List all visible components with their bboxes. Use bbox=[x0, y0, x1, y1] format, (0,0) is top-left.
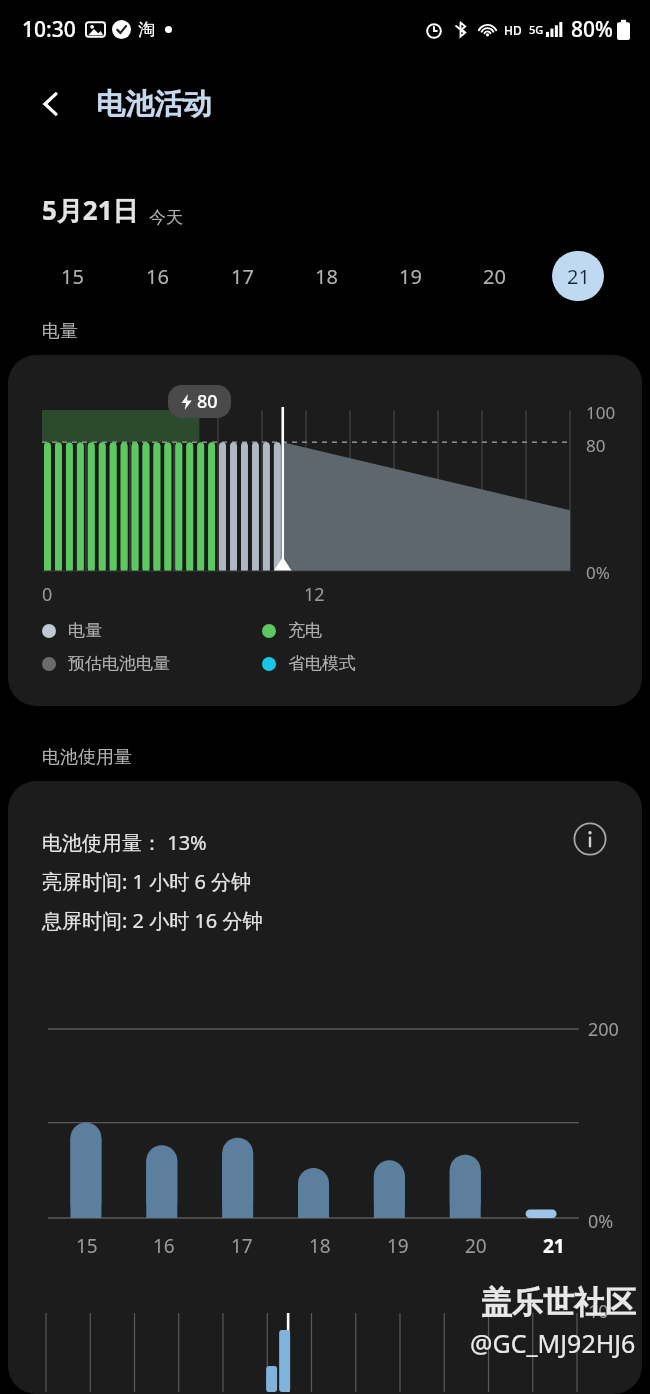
staticText: 省电模式 bbox=[288, 653, 356, 674]
staticText: 16 bbox=[146, 263, 169, 290]
staticText: 0% bbox=[588, 1209, 614, 1234]
staticText: 0 bbox=[42, 582, 53, 607]
button[interactable]: 17 bbox=[200, 250, 284, 302]
staticText: 10 bbox=[588, 1299, 609, 1324]
staticText: 淘 bbox=[138, 19, 155, 40]
staticText: 电池活动 bbox=[96, 86, 212, 123]
staticText: 18 bbox=[309, 1233, 331, 1259]
staticText: 200 bbox=[588, 1017, 619, 1042]
button[interactable]: 21 bbox=[536, 250, 620, 302]
staticText: 19 bbox=[399, 263, 422, 290]
staticText: 15 bbox=[76, 1233, 98, 1259]
staticText: 预估电池电量 bbox=[68, 653, 170, 674]
staticText: 5月21日 bbox=[42, 192, 139, 228]
staticText: 80 bbox=[197, 389, 218, 414]
staticText: 17 bbox=[231, 263, 254, 290]
staticText: 80 bbox=[586, 434, 606, 457]
button[interactable]: 16 bbox=[115, 250, 200, 302]
staticText: @GC_MJ92HJ6 bbox=[470, 1326, 636, 1360]
staticText: 今天 bbox=[149, 207, 183, 228]
staticText: 亮屏时间: 1 小时 6 分钟 bbox=[42, 868, 252, 895]
staticText: 18 bbox=[315, 263, 338, 290]
staticText: 电池使用量： 13% bbox=[42, 829, 207, 856]
button[interactable]: Info bbox=[568, 817, 612, 861]
staticText: 10:30 bbox=[22, 15, 76, 44]
staticText: 16 bbox=[153, 1233, 175, 1259]
staticText: 电量 bbox=[42, 320, 78, 343]
staticText: 15 bbox=[61, 263, 84, 290]
staticText: 0% bbox=[586, 561, 610, 584]
staticText: 电池使用量 bbox=[42, 746, 132, 769]
button[interactable]: 100 bbox=[8, 355, 642, 706]
staticText: 21 bbox=[543, 1233, 565, 1259]
staticText: HD bbox=[504, 22, 522, 38]
staticText: 80% bbox=[571, 15, 613, 44]
staticText: 20 bbox=[483, 263, 506, 290]
staticText: 12 bbox=[304, 582, 325, 607]
button[interactable]: 18 bbox=[284, 250, 368, 302]
staticText: 20 bbox=[465, 1233, 487, 1259]
staticText: 100 bbox=[586, 401, 616, 424]
staticText: 21 bbox=[567, 263, 590, 290]
button[interactable]: 15 bbox=[30, 250, 115, 302]
button[interactable]: Back bbox=[28, 82, 72, 126]
staticText: 17 bbox=[231, 1233, 253, 1259]
staticText: 19 bbox=[387, 1233, 409, 1259]
staticText: 5G bbox=[529, 22, 544, 37]
staticText: 息屏时间: 2 小时 16 分钟 bbox=[42, 907, 263, 934]
staticText: 电量 bbox=[68, 620, 102, 641]
staticText: 盖乐世社区 bbox=[481, 1283, 636, 1322]
button[interactable]: 19 bbox=[368, 250, 452, 302]
button[interactable]: 20 bbox=[452, 250, 536, 302]
staticText: 充电 bbox=[288, 620, 322, 641]
